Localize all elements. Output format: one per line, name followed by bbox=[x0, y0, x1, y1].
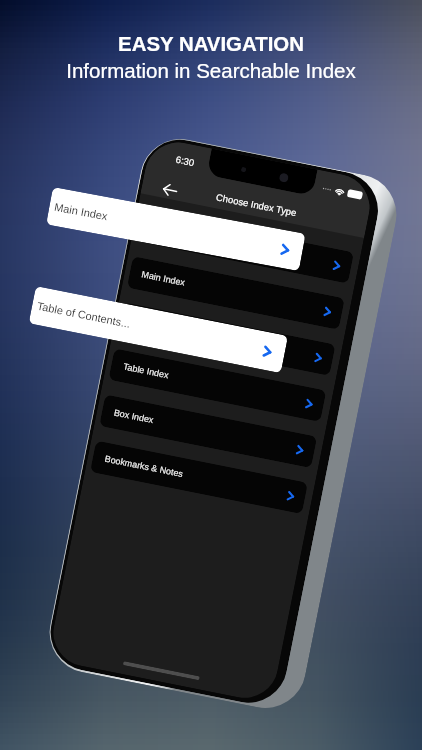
button[interactable] bbox=[136, 210, 354, 284]
button[interactable]: Main Index bbox=[46, 187, 306, 271]
staticText: Choose Index Type bbox=[215, 191, 298, 218]
staticText: 6:30 bbox=[175, 154, 196, 168]
button[interactable]: Table of Contents... bbox=[29, 286, 288, 373]
staticText: EASY NAVIGATION bbox=[118, 33, 304, 56]
staticText: Information in Searchable Index bbox=[66, 59, 356, 82]
button[interactable]: Back bbox=[157, 177, 183, 203]
button[interactable]: Box Index bbox=[99, 394, 317, 468]
staticText: Table of Contents... bbox=[36, 300, 131, 330]
staticText: Main Index bbox=[141, 269, 187, 288]
staticText: Table Index bbox=[122, 361, 170, 380]
button[interactable]: Main Index bbox=[127, 256, 345, 330]
staticText: Main Index bbox=[53, 201, 109, 222]
button[interactable]: Table of Contents... bbox=[118, 302, 336, 376]
staticText: Bookmarks & Notes bbox=[104, 454, 184, 479]
staticText: Table of Contents... bbox=[131, 315, 210, 340]
button[interactable]: Bookmarks & Notes bbox=[90, 440, 308, 514]
button[interactable]: Table Index bbox=[108, 348, 326, 422]
staticText: Box Index bbox=[113, 407, 155, 425]
